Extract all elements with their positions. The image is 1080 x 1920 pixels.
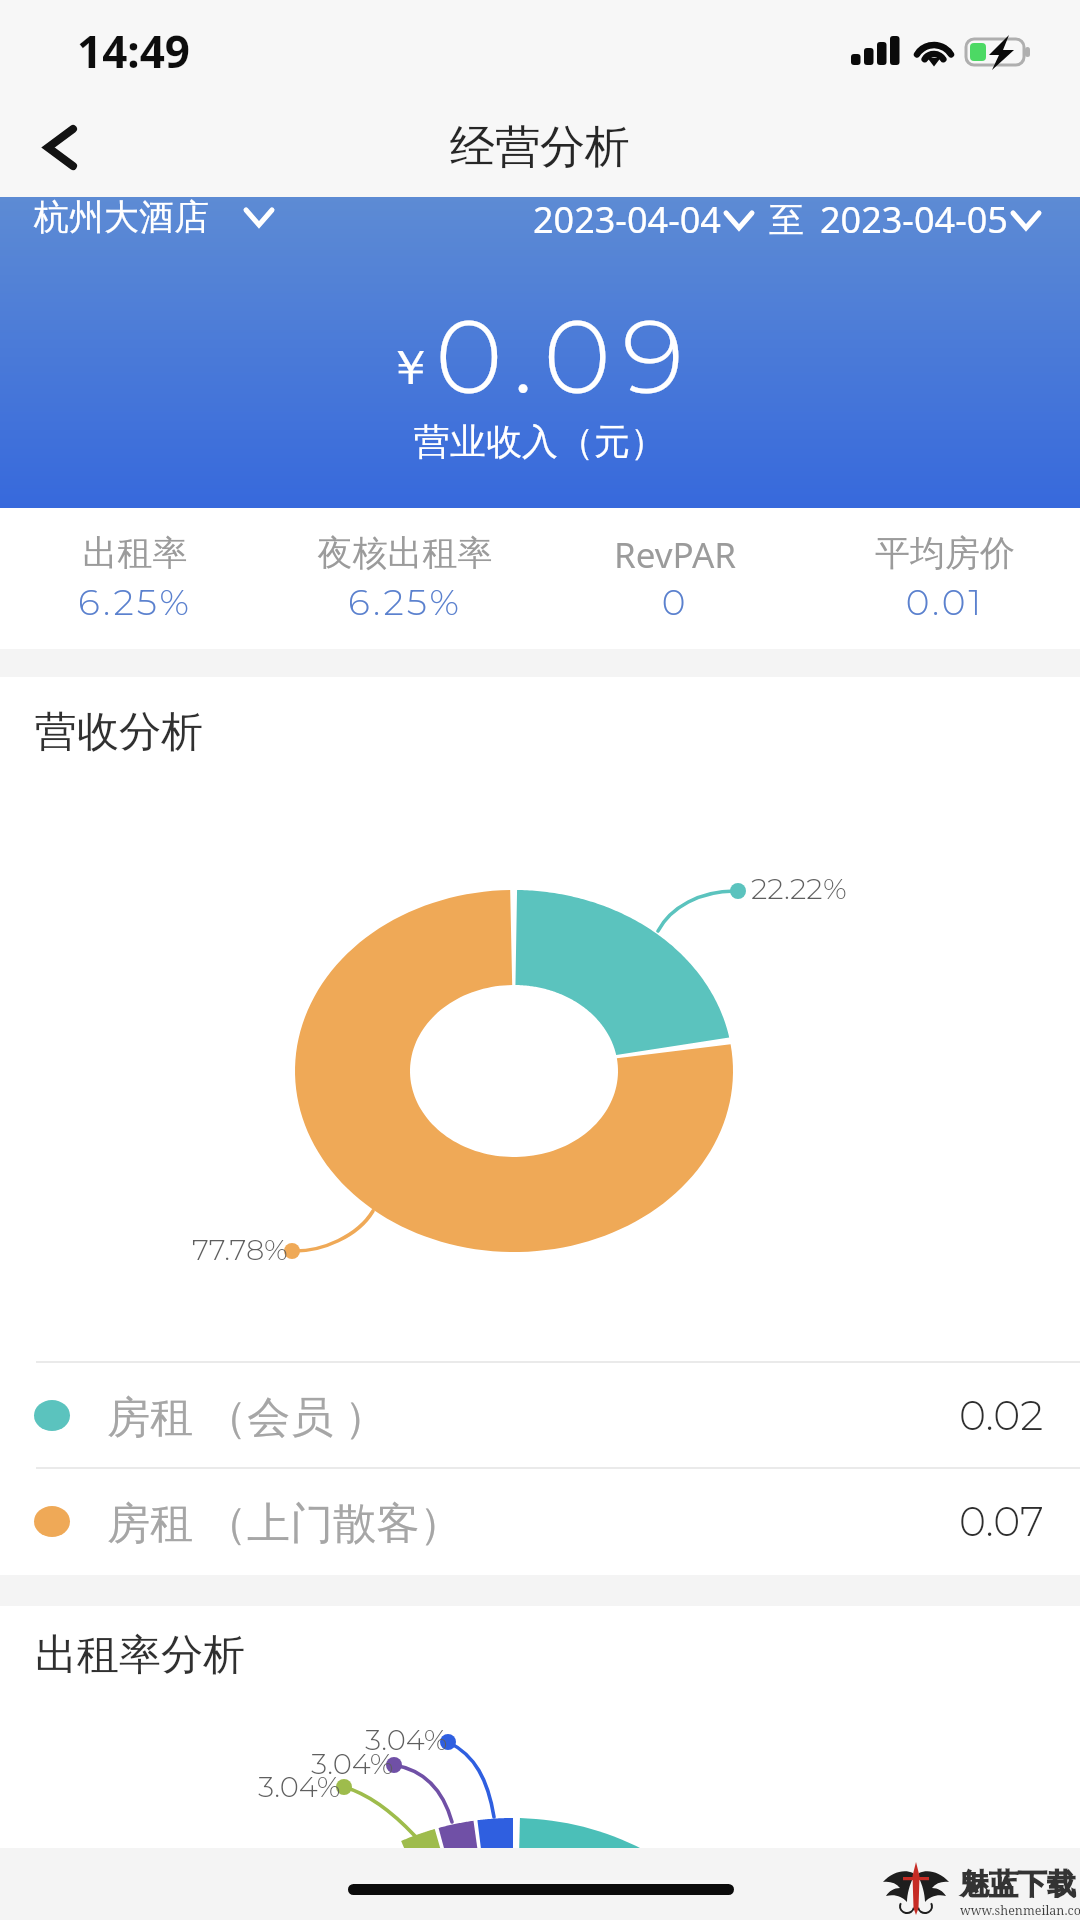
staticText: 0.09 [435,293,695,419]
staticText: 至 [769,198,804,242]
staticText: 夜核出租率 [270,531,540,575]
staticText: 房租 （会员 ） [107,1386,388,1445]
staticText: 出租率分析 [35,1629,245,1682]
staticText: 3.04% [365,1722,448,1757]
staticText: 0.07 [959,1496,1044,1546]
button[interactable]: 出租率 [0,508,270,649]
staticText: ￥ [386,338,434,398]
button[interactable]: 杭州大酒店 [30,191,281,243]
button[interactable]: 房租 （上门散客） [34,1483,1044,1559]
staticText: 0.02 [959,1390,1044,1440]
button[interactable]: 房租 （会员 ） [34,1377,1044,1453]
staticText: 3.04% [258,1769,341,1804]
staticText: 平均房价 [810,531,1080,575]
button[interactable]: 夜核出租率 [270,508,540,649]
button[interactable]: 2023-04-04 [529,191,761,248]
staticText: 2023-04-05 [820,195,1008,244]
staticText: 出租率 [0,531,270,575]
staticText: 0.01 [810,580,1080,624]
staticText: 魅蓝下载 [960,1866,1076,1903]
staticText: 2023-04-04 [533,195,721,244]
staticText: 经营分析 [450,119,630,176]
staticText: 22.22% [751,871,847,906]
button[interactable]: 2023-04-05 [816,191,1048,248]
staticText: 营业收入（元） [0,419,1080,464]
staticText: 房租 （上门散客） [107,1492,463,1551]
button[interactable]: 平均房价 [810,508,1080,649]
button[interactable]: Back [0,97,120,197]
staticText: 6.25% [0,580,270,624]
staticText: 14:49 [77,21,191,81]
staticText: RevPAR [540,531,810,579]
staticText: www.shenmeilan.com [960,1902,1080,1919]
staticText: 0 [540,580,810,624]
staticText: 杭州大酒店 [34,195,209,239]
staticText: 营收分析 [35,706,203,759]
staticText: 77.78% [192,1232,288,1267]
staticText: 3.04% [311,1746,394,1781]
staticText: 6.25% [270,580,540,624]
button[interactable]: RevPAR [540,508,810,649]
